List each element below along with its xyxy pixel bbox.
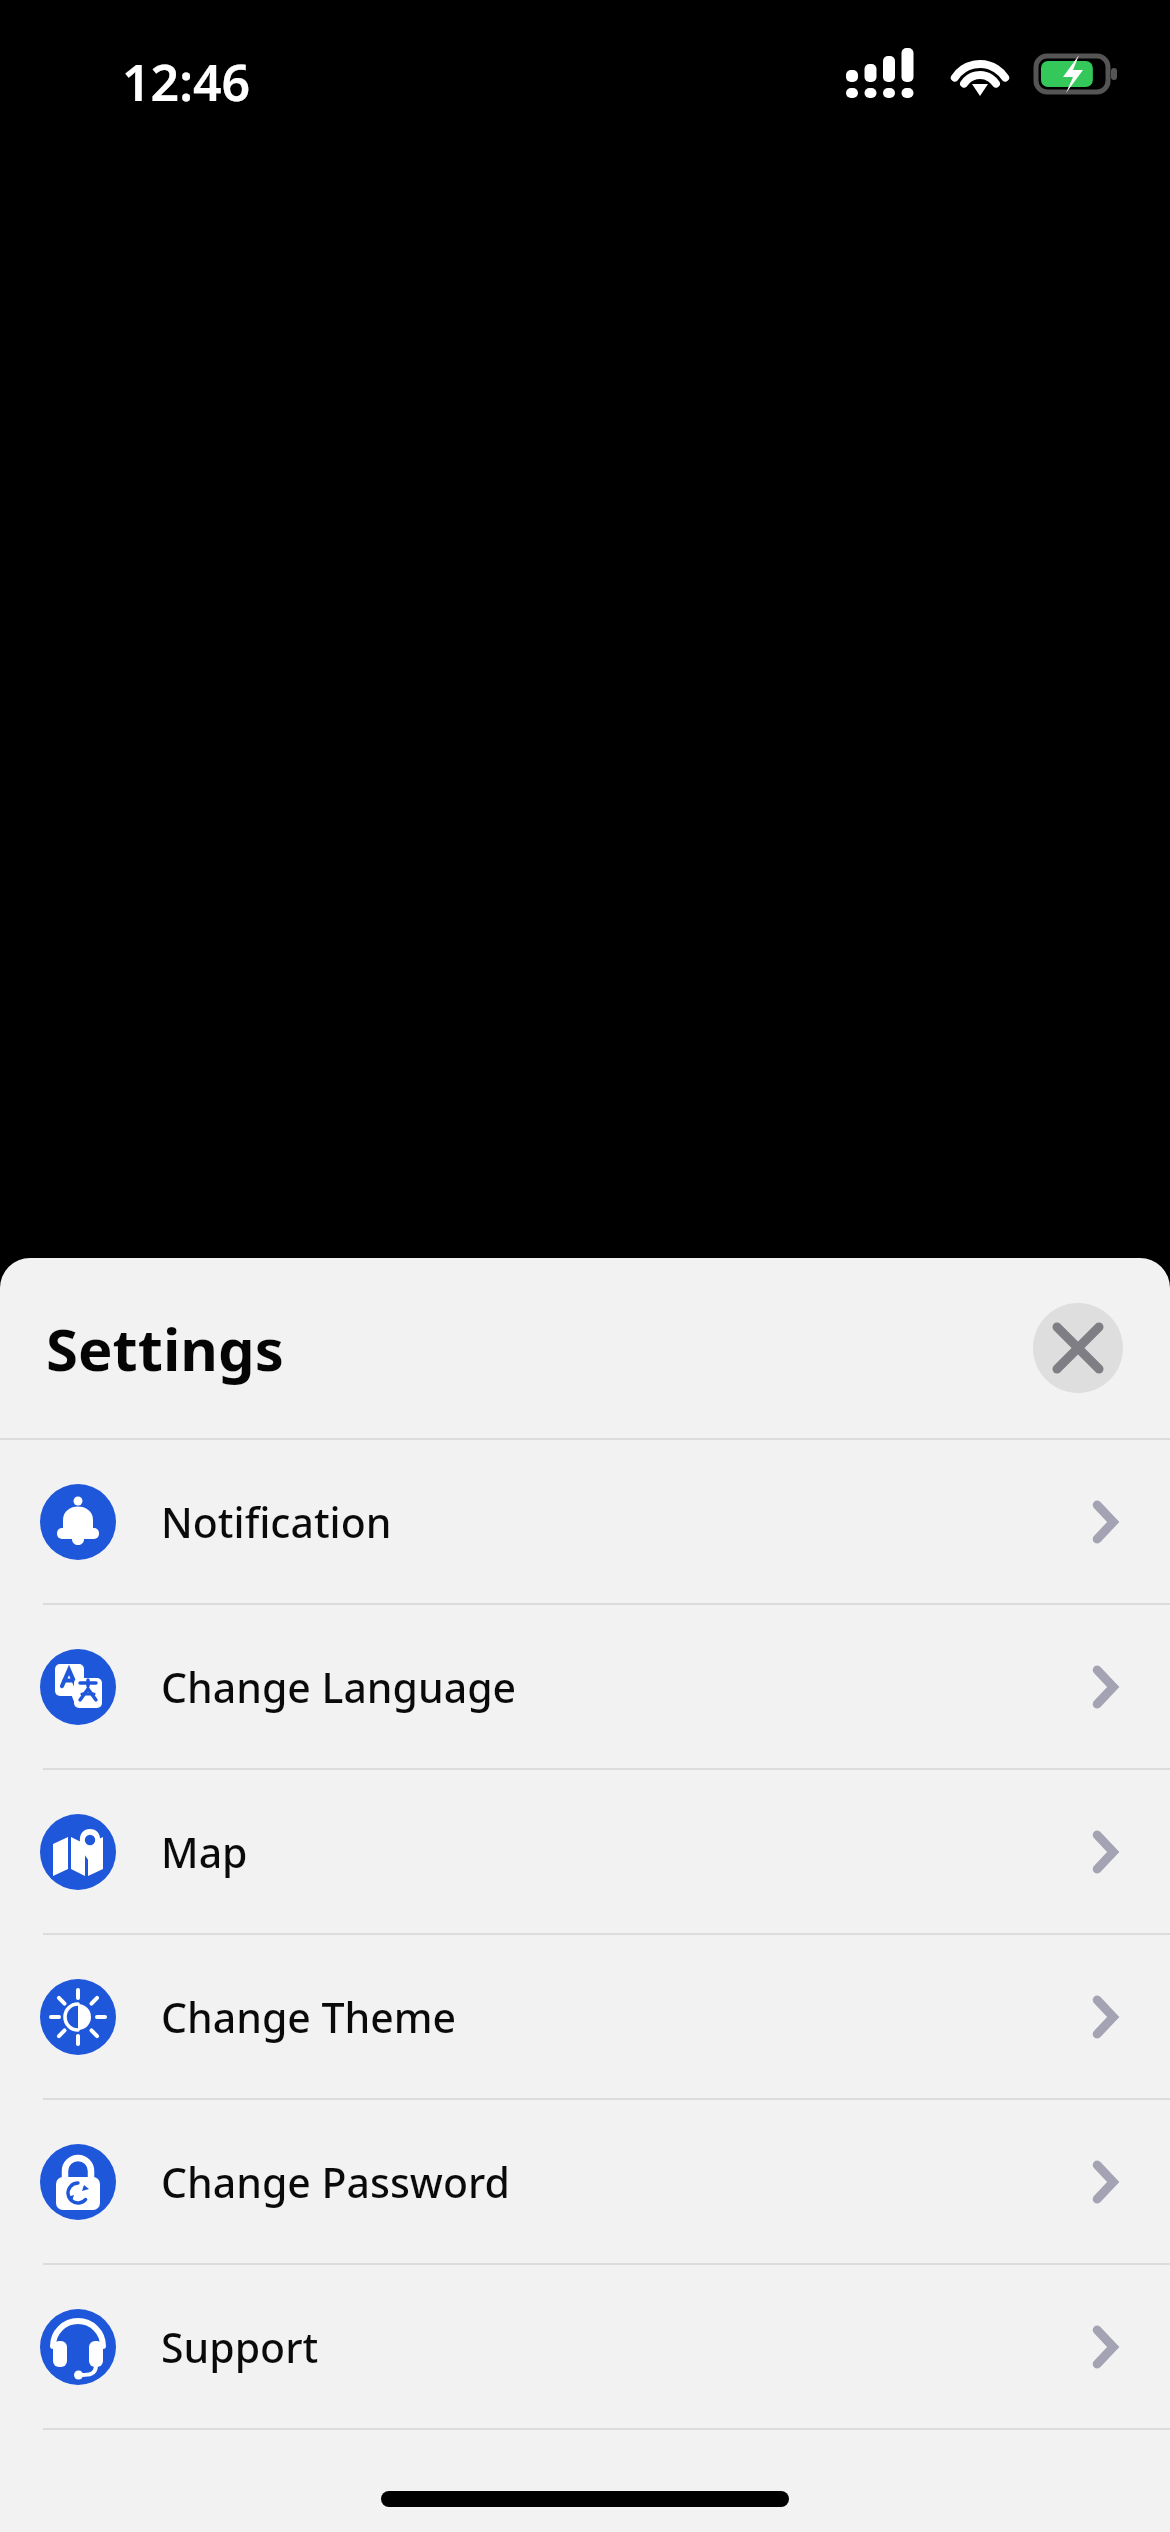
staticText: Change Language (161, 1659, 1080, 1715)
button[interactable]: Notification (0, 1440, 1170, 1603)
staticText: Map (161, 1824, 1080, 1880)
staticText: Support (161, 2319, 1080, 2375)
staticText: Notification (161, 1494, 1080, 1550)
staticText: Settings (46, 1309, 284, 1388)
button[interactable]: Support (0, 2265, 1170, 2428)
button[interactable]: Change Language (0, 1605, 1170, 1768)
button[interactable]: Change Password (0, 2100, 1170, 2263)
staticText: 12:46 (122, 48, 251, 116)
staticText: Change Theme (161, 1989, 1080, 2045)
staticText: Change Password (161, 2154, 1080, 2210)
button[interactable]: Change Theme (0, 1935, 1170, 2098)
button[interactable]: Close (1033, 1303, 1123, 1393)
button[interactable]: Map (0, 1770, 1170, 1933)
